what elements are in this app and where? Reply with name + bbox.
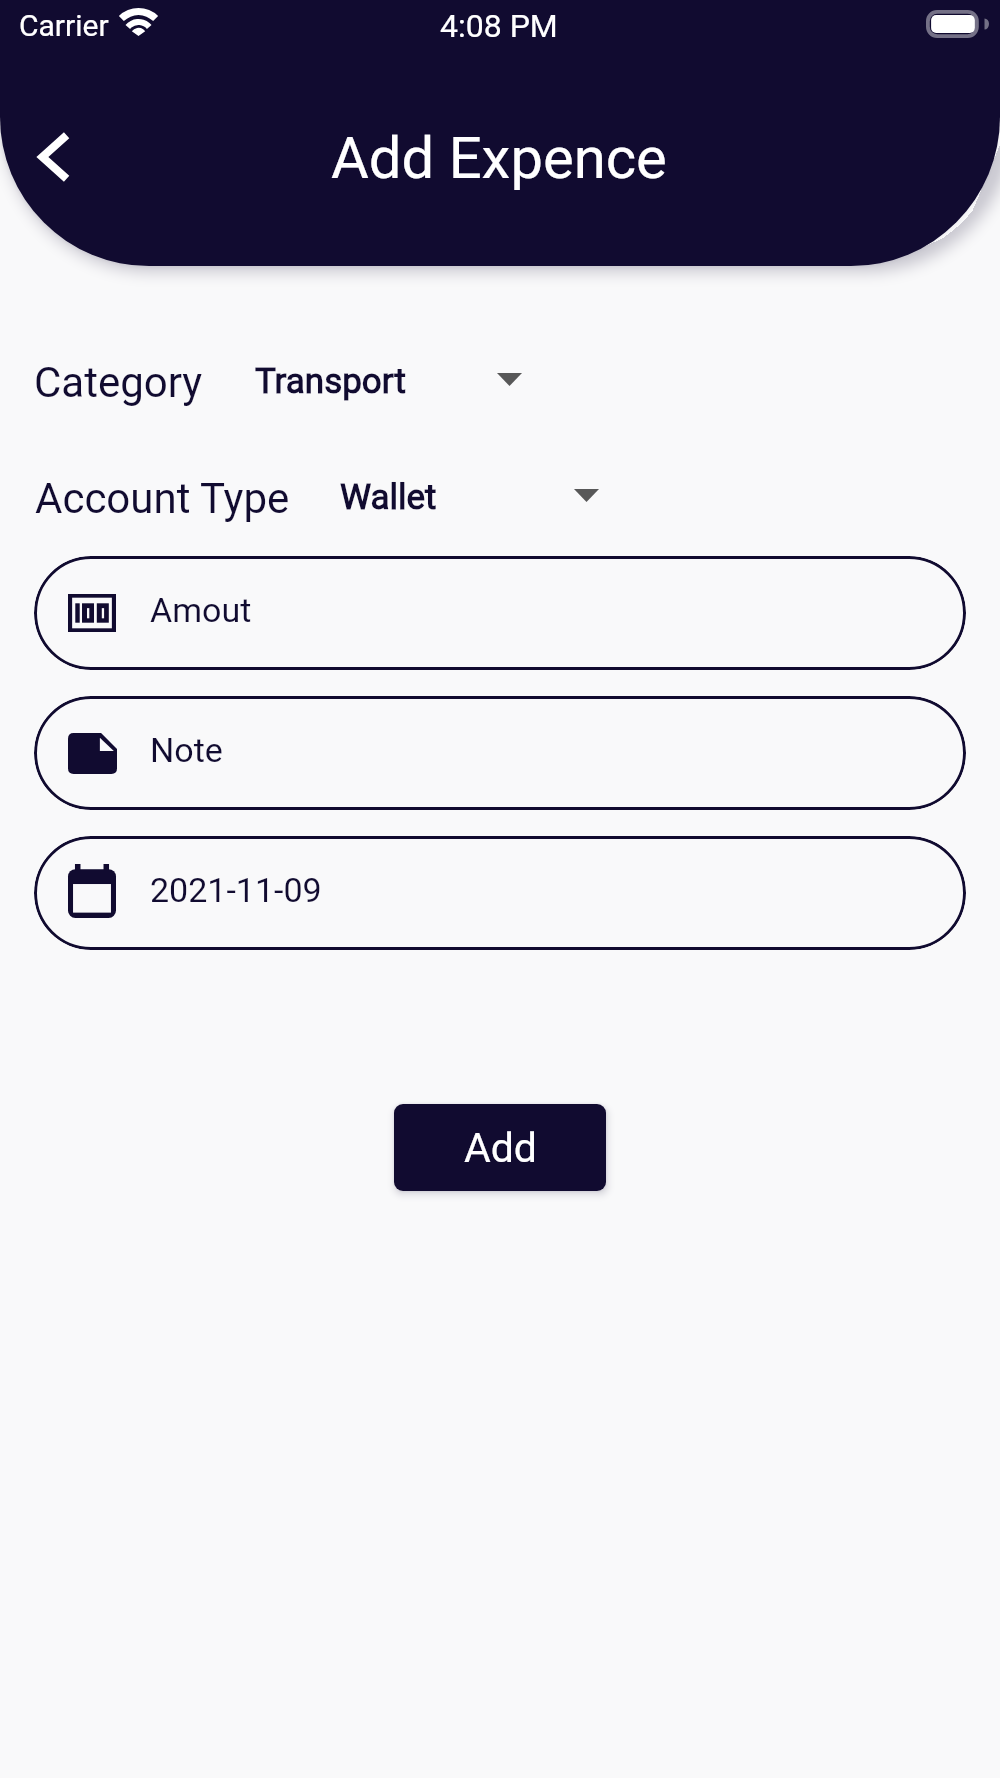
button[interactable]: Add bbox=[394, 1104, 606, 1191]
staticText: Amout bbox=[150, 590, 252, 630]
staticText: Account Type bbox=[35, 474, 290, 523]
staticText: Transport bbox=[255, 361, 406, 402]
button[interactable]: Wallet bbox=[333, 469, 623, 523]
button[interactable]: 2021-11-09 bbox=[34, 836, 966, 950]
staticText: Add bbox=[464, 1124, 537, 1172]
staticText: Note bbox=[150, 730, 223, 770]
button[interactable]: Transport bbox=[248, 353, 538, 407]
button[interactable]: Back bbox=[16, 119, 92, 195]
staticText: Wallet bbox=[340, 477, 437, 518]
staticText: Add Expence bbox=[331, 124, 667, 192]
staticText: Carrier bbox=[19, 8, 109, 43]
staticText: Category bbox=[34, 358, 203, 407]
staticText: 2021-11-09 bbox=[150, 870, 322, 910]
button[interactable]: Amout bbox=[34, 556, 966, 670]
button[interactable]: Note bbox=[34, 696, 966, 810]
staticText: 4:08 PM bbox=[440, 7, 558, 45]
